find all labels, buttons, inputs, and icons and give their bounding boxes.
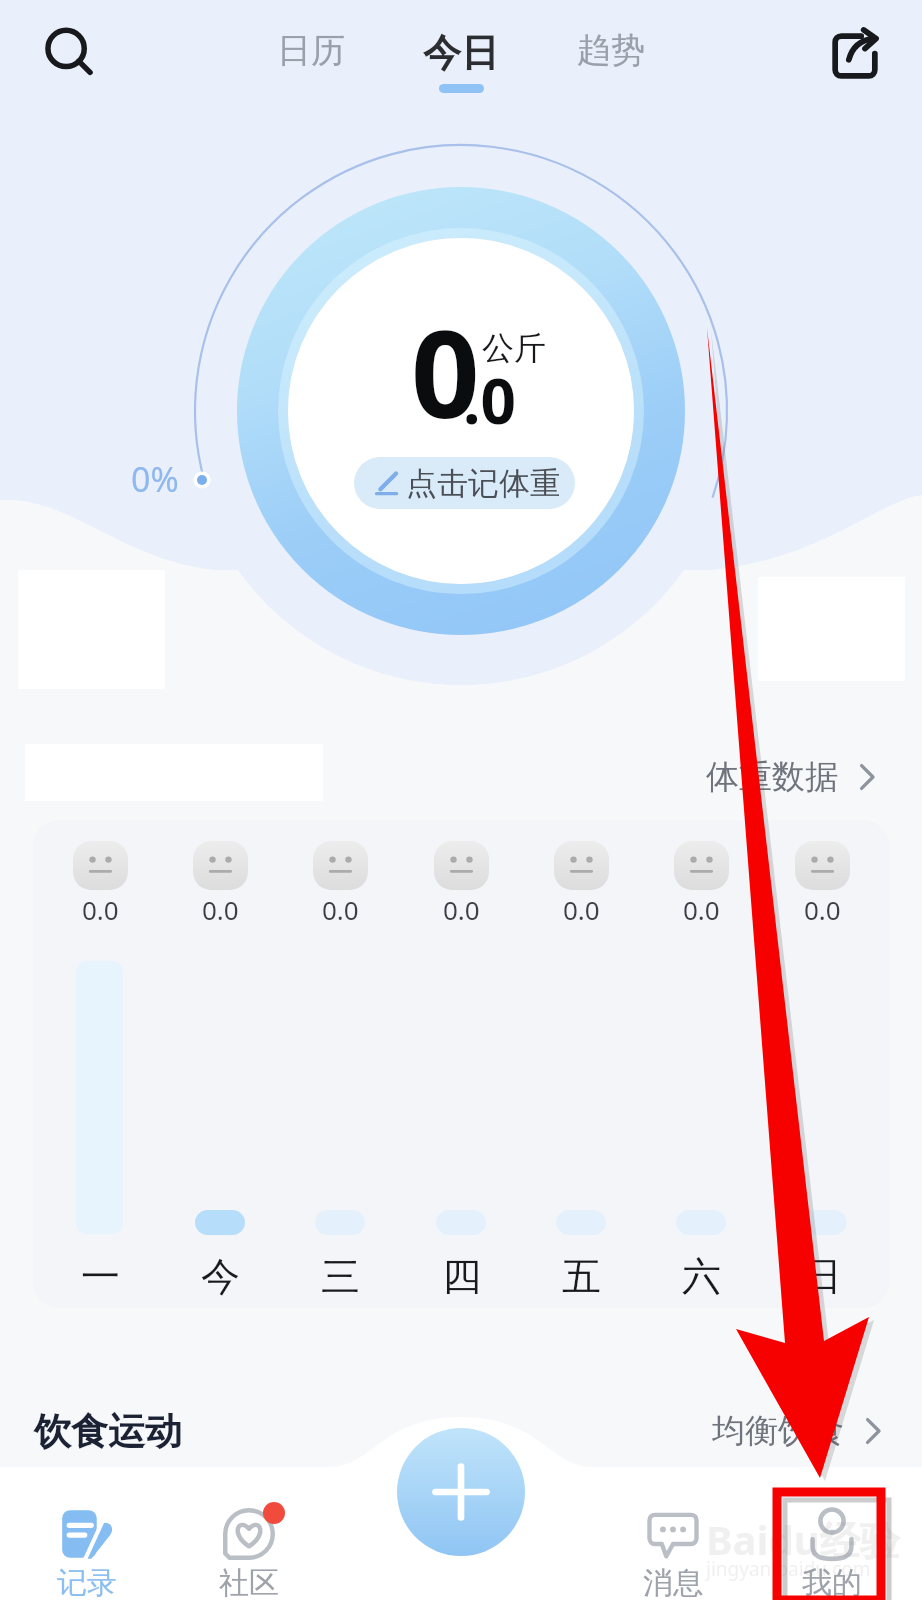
staticText: 0.0	[683, 892, 720, 927]
staticText: 日	[803, 1252, 842, 1301]
button[interactable]: 趋势	[573, 29, 649, 72]
button[interactable]: 0.0	[640, 820, 762, 1308]
staticText: 均衡饮食	[712, 1410, 844, 1452]
button[interactable]: Share	[807, 8, 903, 104]
button[interactable]: Search	[22, 6, 118, 102]
button[interactable]: Add	[397, 1428, 525, 1556]
button[interactable]: 体重数据	[698, 748, 890, 806]
button[interactable]: 今日	[419, 29, 503, 93]
button[interactable]: 0.0	[400, 820, 522, 1308]
staticText: Baidu经验	[706, 1512, 900, 1567]
button[interactable]: 消息	[603, 1498, 743, 1600]
button[interactable]: 0.0	[159, 820, 281, 1308]
staticText: 三	[321, 1252, 360, 1301]
staticText: 0.0	[202, 892, 239, 927]
staticText: 消息	[643, 1564, 703, 1600]
staticText: 0.0	[563, 892, 600, 927]
staticText: 公斤	[482, 328, 546, 368]
staticText: jingyan.baidu.com	[706, 1556, 871, 1582]
button[interactable]: 0.0	[39, 820, 161, 1308]
staticText: 0.0	[82, 892, 119, 927]
button[interactable]: 社区	[179, 1498, 319, 1600]
staticText: 饮食运动	[34, 1408, 182, 1455]
staticText: 一	[81, 1252, 120, 1301]
staticText: 社区	[219, 1564, 279, 1600]
staticText: 今日	[423, 29, 499, 77]
staticText: 四	[442, 1252, 481, 1301]
staticText: 0.0	[804, 892, 841, 927]
staticText: 体重数据	[706, 756, 838, 798]
button[interactable]: 0.0	[279, 820, 401, 1308]
staticText: 点击记体重	[406, 464, 559, 503]
staticText: 0.0	[322, 892, 359, 927]
staticText: 趋势	[577, 29, 645, 72]
staticText: .0	[463, 358, 516, 442]
staticText: 日历	[277, 29, 345, 72]
button[interactable]: 记录	[17, 1498, 157, 1600]
button[interactable]: 0.0	[761, 820, 883, 1308]
staticText: 我的	[802, 1564, 862, 1600]
button[interactable]: 均衡饮食	[706, 1404, 894, 1458]
staticText: 0%	[131, 456, 179, 502]
staticText: 今	[201, 1252, 240, 1301]
staticText: 0	[411, 290, 480, 453]
staticText: 记录	[57, 1564, 117, 1600]
button[interactable]: 日历	[273, 29, 349, 72]
staticText: 六	[682, 1252, 721, 1301]
button[interactable]: 点击记体重	[354, 457, 575, 509]
staticText: 五	[562, 1252, 601, 1301]
button[interactable]: 我的	[762, 1498, 902, 1600]
staticText: 0.0	[443, 892, 480, 927]
button[interactable]: 0.0	[520, 820, 642, 1308]
